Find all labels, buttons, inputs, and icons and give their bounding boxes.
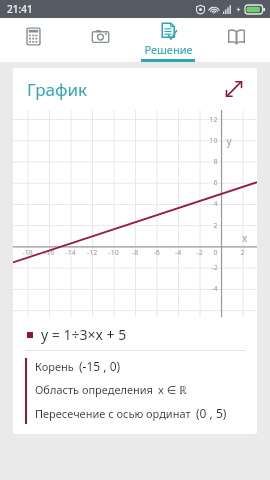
staticText: Решение xyxy=(144,42,193,57)
button[interactable]: Корень xyxy=(35,358,247,374)
button[interactable]: Book xyxy=(202,18,270,62)
button[interactable]: Пересечение с осью ординат xyxy=(35,405,247,421)
staticText: (-15 , 0) xyxy=(79,358,121,374)
staticText: x ∈ ℝ xyxy=(158,382,187,397)
button[interactable]: Camera xyxy=(67,18,134,62)
staticText: График xyxy=(27,78,88,101)
button[interactable]: y = 1÷3×x + 5 xyxy=(27,325,243,344)
button[interactable]: Solution xyxy=(134,18,202,62)
staticText: y = 1÷3×x + 5 xyxy=(41,325,127,344)
staticText: Область определения xyxy=(35,382,153,397)
button[interactable]: Область определения xyxy=(35,382,247,397)
button[interactable]: Graph plot xyxy=(13,110,257,317)
staticText: Корень xyxy=(35,359,74,374)
staticText: (0 , 5) xyxy=(196,405,227,421)
button[interactable]: Expand graph xyxy=(221,76,247,102)
button[interactable]: Calculator xyxy=(0,18,67,62)
staticText: Пересечение с осью ординат xyxy=(35,406,191,421)
staticText: 21:41 xyxy=(7,2,33,16)
